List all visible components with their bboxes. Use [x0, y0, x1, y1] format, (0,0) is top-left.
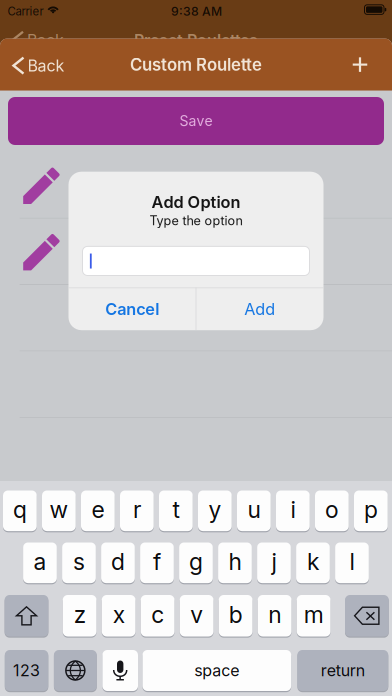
staticText: Custom Roulette [130, 54, 262, 75]
button[interactable]: Shift [5, 595, 48, 638]
button[interactable]: a [23, 542, 57, 584]
button[interactable]: Delete [345, 595, 389, 638]
staticText: w [49, 496, 68, 523]
button[interactable]: Add [338, 43, 382, 87]
staticText: space [194, 661, 239, 680]
staticText: x [113, 601, 125, 628]
button[interactable]: w [42, 490, 76, 532]
button[interactable]: Cancel [68, 288, 196, 330]
staticText: Save [179, 112, 212, 129]
staticText: e [91, 496, 104, 523]
staticText: o [325, 496, 339, 523]
button[interactable]: Save [8, 97, 384, 145]
staticText: c [151, 601, 164, 628]
button[interactable]: x [102, 595, 136, 638]
button[interactable]: e [81, 490, 115, 532]
button[interactable] [0, 285, 392, 351]
staticText: m [304, 601, 324, 628]
staticText: d [111, 548, 125, 575]
button[interactable] [0, 219, 392, 285]
button[interactable]: p [354, 490, 388, 532]
button[interactable]: q [3, 490, 37, 532]
button[interactable]: o [315, 490, 349, 532]
button[interactable]: n [258, 595, 292, 638]
staticText: z [74, 601, 86, 628]
button[interactable]: t [159, 490, 193, 532]
staticText: r [133, 496, 141, 523]
staticText: Type the option [149, 213, 242, 228]
staticText: Preset Roulettes [134, 30, 258, 50]
button[interactable]: i [276, 490, 310, 532]
button[interactable]: k [296, 542, 330, 584]
staticText: t [172, 496, 179, 523]
staticText: u [247, 496, 260, 523]
button[interactable]: return [297, 650, 388, 692]
button[interactable]: g [179, 542, 213, 584]
button[interactable]: Back [7, 44, 70, 88]
staticText: Back [27, 56, 64, 75]
button[interactable] [0, 152, 392, 219]
button[interactable]: y [198, 490, 232, 532]
button[interactable]: u [237, 490, 271, 532]
staticText: Add Option [151, 192, 240, 212]
staticText: j [271, 548, 276, 575]
staticText: y [208, 496, 221, 523]
button[interactable]: m [297, 595, 331, 638]
button[interactable]: z [63, 595, 97, 638]
button[interactable]: Next keyboard [54, 650, 97, 692]
staticText: q [13, 496, 27, 523]
staticText: l [349, 548, 354, 575]
staticText: Back [27, 30, 64, 50]
button[interactable]: s [62, 542, 96, 584]
staticText: b [229, 601, 243, 628]
button[interactable]: Add [196, 288, 323, 330]
staticText: a [33, 548, 46, 575]
button[interactable]: space [142, 650, 291, 692]
staticText: s [73, 548, 85, 575]
button[interactable]: c [141, 595, 175, 638]
button[interactable]: r [120, 490, 154, 532]
button[interactable]: j [257, 542, 291, 584]
staticText: Cancel [105, 299, 159, 319]
button[interactable]: 123 [5, 650, 48, 692]
staticText: p [364, 496, 378, 523]
staticText: k [307, 548, 319, 575]
staticText: 9:38 AM [171, 4, 222, 19]
button[interactable]: d [101, 542, 135, 584]
staticText: i [290, 496, 295, 523]
staticText: f [153, 548, 161, 575]
button[interactable]: h [218, 542, 252, 584]
staticText: 123 [13, 661, 40, 680]
staticText: h [228, 548, 241, 575]
button[interactable]: b [219, 595, 253, 638]
button[interactable]: v [180, 595, 214, 638]
button[interactable]: l [335, 542, 369, 584]
staticText: g [189, 548, 203, 575]
staticText: n [268, 601, 281, 628]
staticText: return [321, 661, 365, 680]
staticText: v [190, 601, 203, 628]
button[interactable]: f [140, 542, 174, 584]
button[interactable]: Dictate [102, 650, 138, 692]
staticText: Carrier [8, 4, 44, 18]
staticText: Add [244, 299, 275, 319]
